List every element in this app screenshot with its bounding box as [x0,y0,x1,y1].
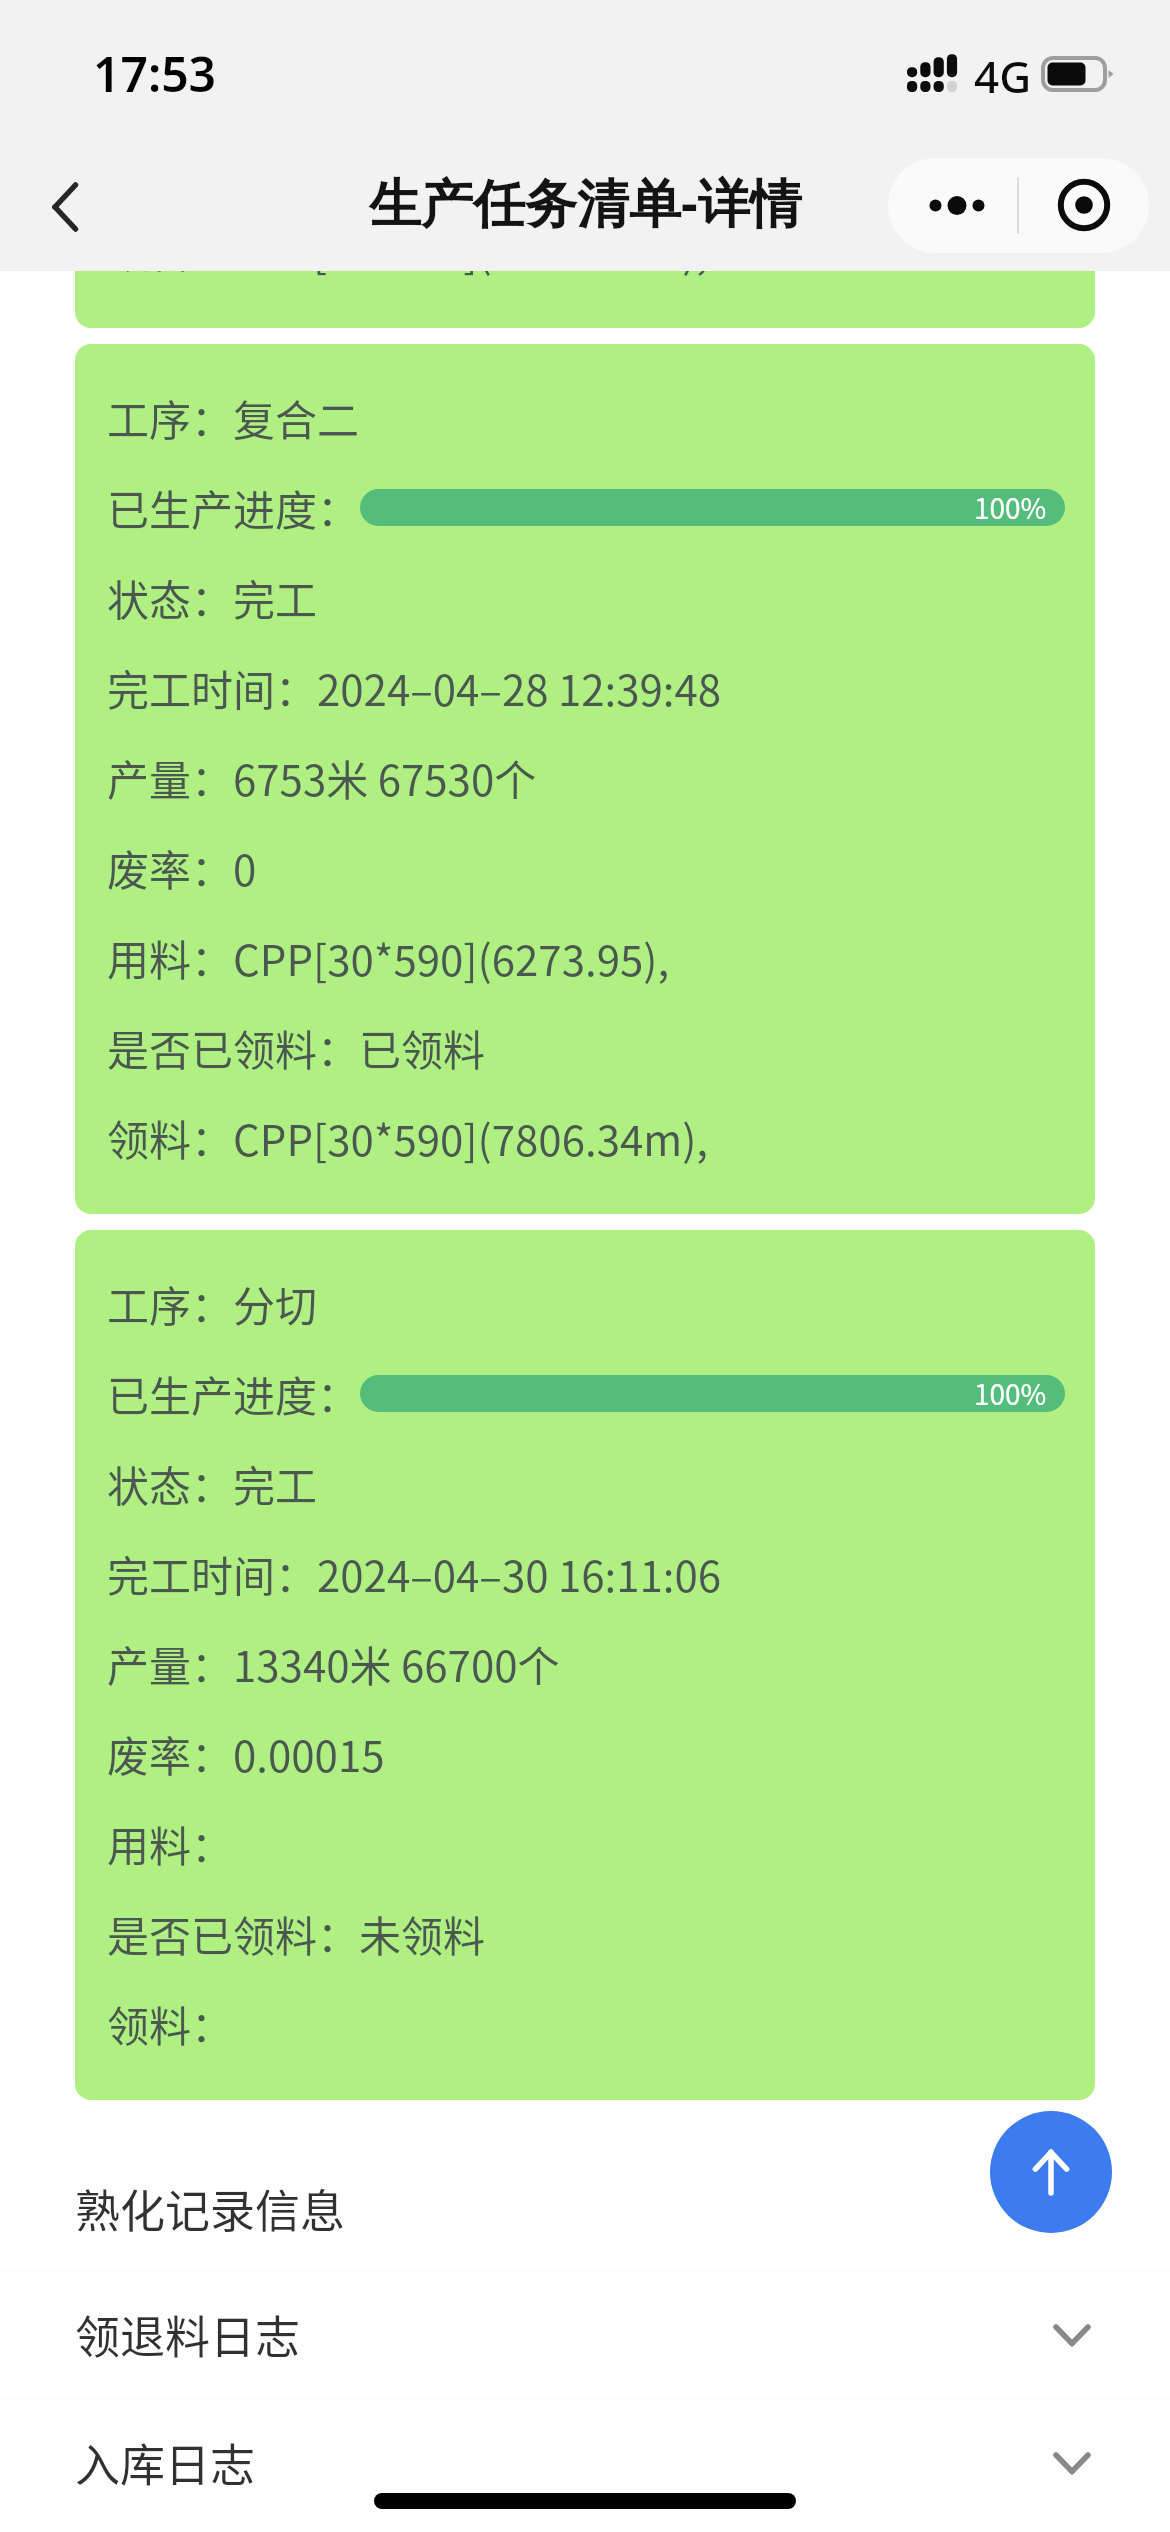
staticText: 工序：分切 [107,1273,318,1334]
staticText: 用料：CPP[30*590](6273.95), [107,927,670,988]
staticText: 完工时间：2024–04–28 12:39:48 [107,657,722,718]
staticText: 产量：13340米 66700个 [107,1633,560,1694]
staticText: 工序：复合二 [107,387,360,448]
staticText: 生产任务清单-详情 [369,166,802,237]
staticText: 17:53 [93,41,217,106]
staticText: 是否已领料：未领料 [107,1903,486,1964]
button[interactable]: More options [888,158,1149,253]
staticText: 已生产进度： [107,1363,360,1424]
staticText: 领料： [107,1993,234,2054]
staticText: 状态：完工 [107,1453,318,1514]
staticText: 废率：0.00015 [107,1723,385,1784]
button[interactable]: 领退料日志 [0,2271,1170,2398]
staticText: 领料：CPP[30*590](7806.34m), [107,1107,709,1168]
staticText: 熟化记录信息 [75,2176,346,2241]
button[interactable]: Back [15,159,111,255]
button[interactable]: 熟化记录信息 [0,2163,1170,2253]
staticText: 4G [974,46,1032,106]
button[interactable]: 工序：分切 [75,1230,1095,2100]
staticText: 100% [974,1375,1047,1410]
staticText: 废率：0 [107,837,257,898]
staticText: 用料： [107,1813,234,1874]
staticText: 是否已领料：已领料 [107,1017,486,1078]
staticText: 完工时间：2024–04–30 16:11:06 [107,1543,722,1604]
button[interactable]: Scroll to top [990,2111,1112,2233]
button[interactable]: 入库日志 [0,2399,1170,2526]
button[interactable]: 工序：复合二 [75,344,1095,1214]
staticText: 100% [974,489,1047,524]
staticText: 已生产进度： [107,477,360,538]
staticText: 入库日志 [75,2430,256,2495]
staticText: 领料：CPP[30*590](7806.34m), [107,271,709,276]
staticText: 领退料日志 [75,2302,301,2367]
staticText: 状态：完工 [107,567,318,628]
staticText: 产量：6753米 67530个 [107,747,537,808]
